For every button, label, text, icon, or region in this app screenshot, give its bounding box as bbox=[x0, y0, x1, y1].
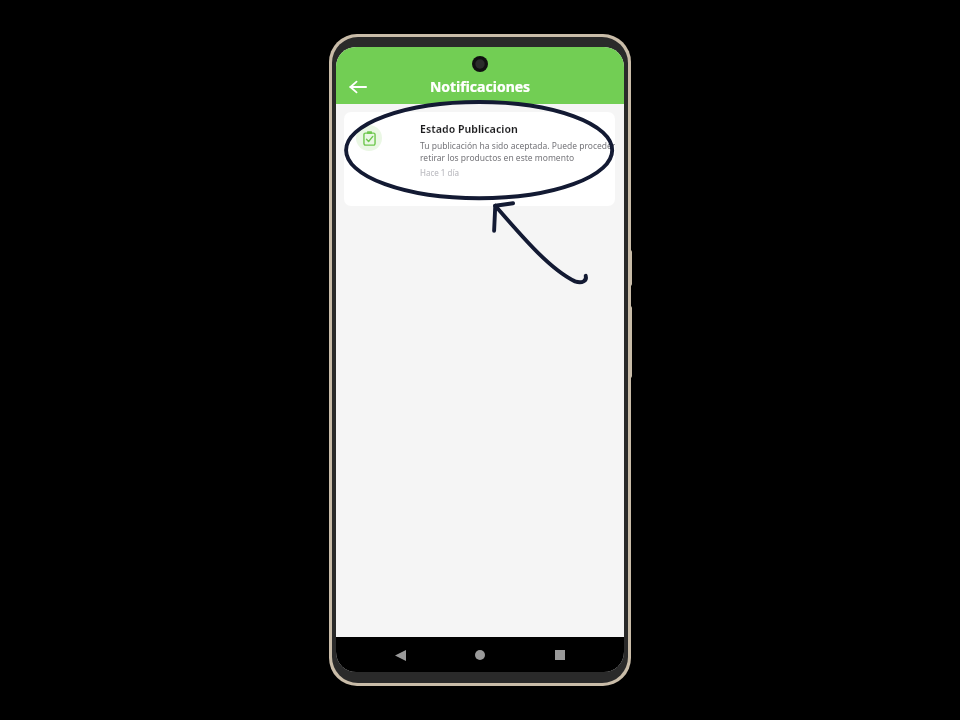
staticText: Notificaciones bbox=[336, 77, 624, 96]
staticText: Tu publicación ha sido aceptada. Puede p… bbox=[420, 140, 615, 164]
button[interactable]: Estado Publicacion bbox=[344, 112, 615, 206]
button[interactable]: Back bbox=[384, 639, 416, 671]
button[interactable]: Home bbox=[464, 639, 496, 671]
button[interactable]: Back bbox=[340, 69, 376, 105]
staticText: Estado Publicacion bbox=[420, 122, 518, 136]
staticText: Hace 1 día bbox=[420, 167, 459, 178]
button[interactable]: Recent apps bbox=[544, 639, 576, 671]
